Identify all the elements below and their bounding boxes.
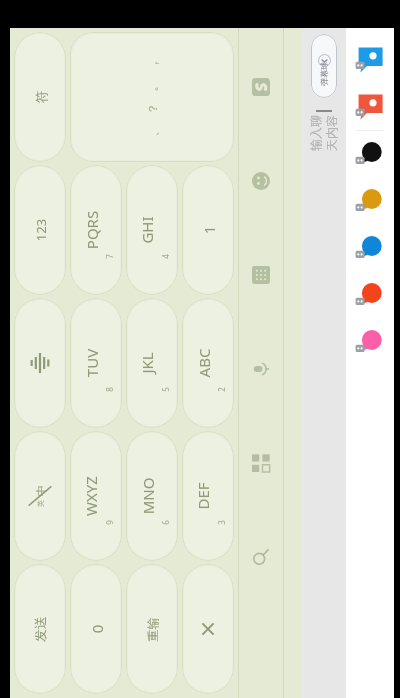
button[interactable]: 0 <box>70 564 122 694</box>
button[interactable]: Apps <box>246 448 276 478</box>
button[interactable]: Chat theme <box>346 36 394 83</box>
staticText: 。 <box>144 79 159 91</box>
staticText: WXYZ <box>81 476 101 516</box>
button[interactable]: Voice input <box>14 298 66 428</box>
staticText: 9 <box>104 520 115 525</box>
staticText: 重输 <box>144 617 159 641</box>
staticText: ？ <box>144 102 159 114</box>
staticText: 5 <box>160 387 171 392</box>
staticText: PQRS <box>81 210 101 249</box>
staticText: 2 <box>216 387 227 392</box>
button[interactable]: 中 <box>14 431 66 561</box>
staticText: 中 <box>33 485 47 496</box>
staticText: 1 <box>198 225 218 234</box>
staticText: MNO <box>137 477 157 514</box>
staticText: ， <box>144 57 159 69</box>
button[interactable]: 1 <box>182 165 234 295</box>
staticText: 0 <box>86 624 106 633</box>
button[interactable]: Sogou input method <box>246 72 276 102</box>
button[interactable]: TUV <box>70 298 122 428</box>
button[interactable]: Search <box>246 542 276 572</box>
button[interactable]: JKL <box>126 298 178 428</box>
button[interactable]: Voice <box>246 354 276 384</box>
button[interactable]: Emoji <box>246 166 276 196</box>
button[interactable]: Chat theme <box>346 225 394 272</box>
staticText: 123 <box>31 218 49 241</box>
staticText: 7 <box>104 254 115 259</box>
button[interactable]: MNO <box>126 431 178 561</box>
button[interactable]: Chat theme <box>346 83 394 130</box>
button[interactable]: DEF <box>182 431 234 561</box>
button[interactable]: ， <box>70 32 234 162</box>
button[interactable]: Chat theme <box>346 178 394 225</box>
button[interactable]: 重输 <box>126 564 178 694</box>
button[interactable]: 发送 <box>14 564 66 694</box>
staticText: JKL <box>137 352 157 374</box>
staticText: ABC <box>193 348 213 377</box>
staticText: TUV <box>81 348 101 377</box>
button[interactable]: 123 <box>14 165 66 295</box>
button[interactable]: PQRS <box>70 165 122 295</box>
button[interactable]: Keyboard layout <box>246 260 276 290</box>
staticText: 发送 <box>32 616 48 642</box>
staticText: 英 <box>36 500 45 507</box>
button[interactable]: Chat theme <box>346 131 394 178</box>
button[interactable]: 符 <box>14 32 66 162</box>
button[interactable]: GHI <box>126 165 178 295</box>
button[interactable]: WXYZ <box>70 431 122 561</box>
other: Voice input <box>27 350 53 376</box>
staticText: DEF <box>193 482 213 510</box>
button[interactable]: Delete <box>182 564 234 694</box>
staticText: 8 <box>104 387 115 392</box>
button[interactable]: Chat theme <box>346 319 394 366</box>
staticText: 4 <box>160 254 171 259</box>
staticText: 输入聊天内容 <box>308 111 340 155</box>
staticText: 6 <box>160 520 171 525</box>
staticText: 符 <box>32 90 48 103</box>
button[interactable]: Chat theme <box>346 272 394 319</box>
staticText: 、 <box>144 124 159 136</box>
button[interactable]: ABC <box>182 298 234 428</box>
staticText: 弹幕球 <box>319 62 329 86</box>
staticText: GHI <box>137 216 157 244</box>
other: Delete <box>198 619 218 639</box>
staticText: 3 <box>216 520 227 525</box>
button[interactable]: 弹幕球 <box>311 34 337 98</box>
